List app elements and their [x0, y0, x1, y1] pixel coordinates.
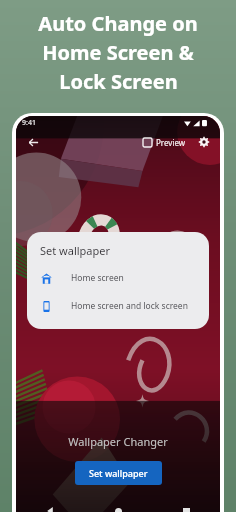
button[interactable]: Set wallpaper	[75, 461, 162, 485]
staticText: Auto Change on	[38, 10, 198, 37]
button[interactable]: Preview	[141, 135, 188, 150]
staticText: Wallpaper Changer	[16, 434, 220, 449]
button[interactable]: Back	[16, 499, 84, 512]
button[interactable]: Home screen and lock screen	[27, 295, 209, 317]
button[interactable]: Back	[23, 132, 43, 152]
staticText: Lock Screen	[59, 68, 178, 95]
button[interactable]: Home screen	[27, 267, 209, 289]
button[interactable]: Settings	[195, 133, 213, 151]
staticText: 9:41	[22, 118, 36, 128]
staticText: Set wallpaper	[40, 243, 111, 258]
staticText: Home Screen &	[42, 39, 194, 66]
staticText: Set wallpaper	[89, 467, 148, 479]
button[interactable]: Home	[84, 499, 152, 512]
staticText: Preview	[156, 137, 186, 148]
staticText: Home screen and lock screen	[71, 300, 188, 312]
button[interactable]: Recents	[152, 499, 220, 512]
staticText: Home screen	[71, 272, 124, 284]
